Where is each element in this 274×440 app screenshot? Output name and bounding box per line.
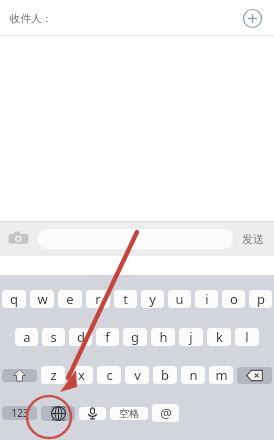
button[interactable]: q [2,290,26,308]
staticText: q [10,290,18,308]
button[interactable]: d [69,328,92,346]
button[interactable]: Shift [2,369,37,382]
staticText: v [134,366,141,384]
button[interactable]: @ [152,404,179,422]
button[interactable]: i [195,290,218,308]
staticText: b [161,366,169,384]
button[interactable]: x [69,366,93,384]
button[interactable] [37,228,234,250]
staticText: m [215,366,228,384]
staticText: 123 [11,406,29,420]
staticText: x [78,366,85,384]
button[interactable]: f [96,328,119,346]
staticText: d [77,328,85,346]
button[interactable]: c [97,366,121,384]
button[interactable]: Voice input [79,407,106,420]
button[interactable]: 空格 [110,407,148,420]
button[interactable]: k [207,328,231,346]
staticText: z [50,366,57,384]
button[interactable]: Camera [7,227,30,250]
staticText: n [189,366,198,384]
button[interactable]: r [86,290,110,308]
staticText: w [37,290,48,308]
staticText: t [123,290,128,308]
button[interactable]: z [41,366,65,384]
staticText: h [159,328,168,346]
staticText: p [257,290,265,308]
staticText: c [106,366,113,384]
button[interactable]: y [141,290,164,308]
button[interactable]: Add recipient [242,8,263,29]
staticText: l [245,328,249,346]
button[interactable]: v [125,366,149,384]
button[interactable]: o [222,290,245,308]
staticText: e [66,290,74,308]
button[interactable]: Switch language [41,406,75,421]
button[interactable]: j [179,328,203,346]
button[interactable]: n [181,366,205,384]
staticText: 空格 [119,407,139,420]
button[interactable]: t [114,290,137,308]
staticText: g [131,328,139,346]
staticText: j [189,328,193,346]
staticText: 收件人： [10,12,52,25]
button[interactable]: b [153,366,177,384]
staticText: s [50,328,57,346]
button[interactable]: l [235,328,259,346]
button[interactable]: m [209,366,233,384]
button[interactable]: a [15,328,38,346]
button[interactable]: 123 [2,406,37,420]
staticText: i [205,290,209,308]
staticText: r [95,290,101,308]
button[interactable]: e [58,290,82,308]
staticText: y [149,290,156,308]
staticText: o [230,290,238,308]
staticText: @ [160,404,172,422]
staticText: f [105,328,110,346]
button[interactable]: 发送 [242,232,264,246]
button[interactable]: s [42,328,65,346]
staticText: a [23,328,31,346]
button[interactable]: u [168,290,191,308]
button[interactable]: p [249,290,272,308]
button[interactable]: h [151,328,175,346]
staticText: u [175,290,184,308]
button[interactable]: w [30,290,54,308]
staticText: k [216,328,223,346]
button[interactable]: Backspace [237,367,272,384]
staticText: 发送 [242,232,264,246]
button[interactable]: g [123,328,147,346]
